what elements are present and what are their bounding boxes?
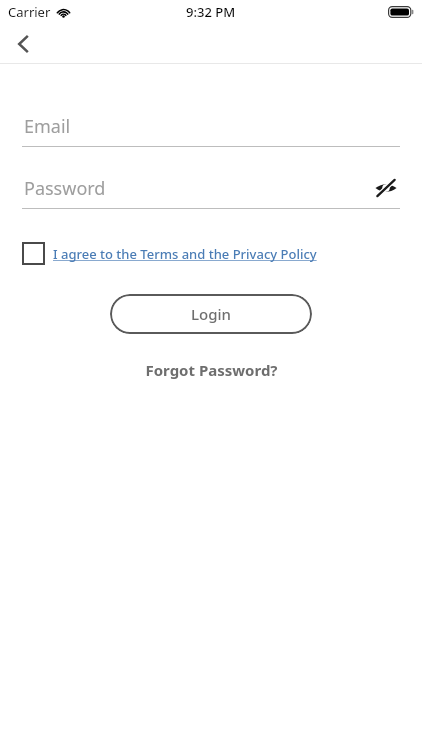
button[interactable]: Forgot Password?	[133, 356, 290, 384]
button[interactable]: Login	[110, 294, 312, 334]
button[interactable]: I agree to the Terms and the Privacy Pol…	[0, 238, 422, 269]
staticText: I agree to the Terms and the Privacy Pol…	[53, 245, 317, 263]
staticText: Carrier	[8, 3, 51, 21]
staticText: Forgot Password?	[145, 360, 278, 380]
button[interactable]: Password	[22, 174, 400, 202]
staticText: Email	[24, 114, 71, 139]
staticText: 9:32 PM	[186, 3, 236, 21]
button[interactable]: Email	[22, 112, 400, 140]
button[interactable]: Show password	[372, 174, 400, 202]
staticText: Password	[24, 176, 106, 201]
staticText: Login	[191, 304, 231, 324]
button[interactable]: Back	[4, 24, 44, 63]
